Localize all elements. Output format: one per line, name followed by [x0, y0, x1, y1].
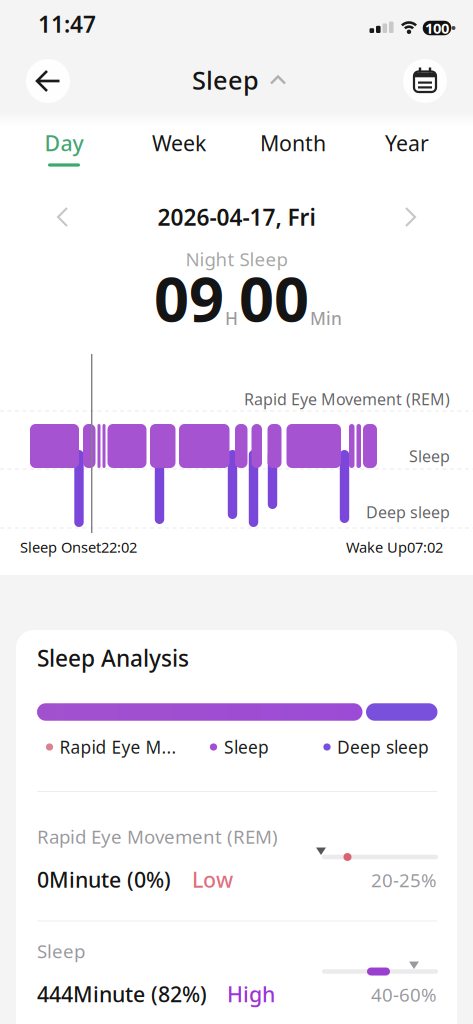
button[interactable]: Year	[365, 123, 449, 163]
staticText: 100	[425, 18, 449, 38]
staticText: Sleep Analysis	[37, 643, 189, 673]
staticText: Month	[260, 129, 326, 157]
staticText: Night Sleep	[185, 247, 287, 271]
button[interactable]	[403, 59, 447, 103]
staticText: Sleep	[192, 63, 259, 97]
staticText: Week	[152, 129, 206, 157]
staticText: Wake Up07:02	[346, 537, 443, 557]
staticText: Day	[44, 129, 83, 157]
staticText: 11:47	[38, 9, 96, 39]
staticText: Deep sleep	[366, 501, 450, 523]
staticText: 444Minute (82%)	[37, 980, 207, 1008]
button[interactable]: Month	[251, 123, 335, 163]
button[interactable]	[43, 197, 83, 237]
staticText: 0Minute (0%)	[37, 865, 171, 894]
staticText: 40-60%	[371, 982, 437, 1007]
staticText: High	[227, 980, 275, 1008]
staticText: 20-25%	[371, 868, 437, 892]
staticText: 09	[154, 257, 224, 339]
staticText: Low	[192, 865, 233, 894]
staticText: 2026-04-17, Fri	[157, 202, 315, 232]
staticText: Rapid Eye Movement (REM)	[37, 824, 278, 849]
button[interactable]	[390, 197, 430, 237]
staticText: Year	[385, 129, 429, 157]
button[interactable]	[26, 59, 70, 103]
staticText: Sleep	[224, 735, 269, 758]
staticText: Rapid Eye Movement (REM)	[244, 388, 450, 410]
staticText: Rapid Eye M...	[59, 735, 176, 758]
staticText: 00	[239, 257, 309, 339]
staticText: Sleep	[409, 445, 450, 467]
button[interactable]: Day	[32, 120, 96, 172]
staticText: Sleep Onset22:02	[20, 537, 137, 557]
staticText: Deep sleep	[337, 735, 429, 758]
button[interactable]: Sleep	[192, 63, 288, 97]
staticText: Min	[310, 307, 342, 330]
staticText: H	[225, 307, 238, 330]
staticText: Sleep	[37, 939, 85, 963]
button[interactable]: Week	[137, 123, 221, 163]
